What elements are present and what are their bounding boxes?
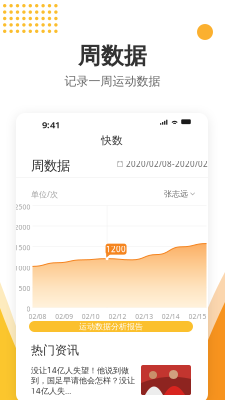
button[interactable]: 2020/02/08-2020/02/15 bbox=[117, 158, 221, 169]
staticText: 周数据 bbox=[78, 42, 147, 70]
staticText: 02/13 bbox=[135, 312, 153, 321]
staticText: 02/14 bbox=[162, 312, 180, 321]
staticText: 2000 bbox=[14, 223, 30, 232]
staticText: 记录一周运动数据 bbox=[64, 74, 160, 88]
staticText: 1200 bbox=[106, 244, 126, 254]
staticText: 0 bbox=[26, 304, 30, 313]
staticText: 2500 bbox=[14, 202, 30, 211]
staticText: 1500 bbox=[14, 243, 30, 252]
staticText: 500 bbox=[18, 284, 30, 293]
button[interactable]: 运动数据分析报告 bbox=[29, 321, 193, 332]
staticText: 02/08 bbox=[28, 312, 46, 321]
staticText: 运动数据分析报告 bbox=[79, 322, 143, 331]
staticText: 02/12 bbox=[108, 312, 126, 321]
staticText: 没让14亿人失望！他说到做到，国足早请他会怎样？没让14亿人失… bbox=[31, 365, 135, 396]
button[interactable]: 张志远 bbox=[164, 189, 195, 199]
staticText: 张志远 bbox=[164, 189, 188, 199]
staticText: 9:41 bbox=[42, 118, 60, 131]
staticText: 周数据 bbox=[31, 157, 70, 174]
staticText: 02/10 bbox=[82, 312, 100, 321]
staticText: 1000 bbox=[14, 264, 30, 272]
staticText: 2020/02/08-2020/02/15 bbox=[126, 158, 221, 169]
staticText: 单位/次 bbox=[31, 189, 58, 200]
staticText: 02/09 bbox=[55, 312, 73, 321]
staticText: 热门资讯 bbox=[31, 343, 79, 358]
staticText: 02/15 bbox=[188, 312, 206, 321]
button[interactable]: 没让14亿人失望！他说到做到，国足早请他会怎样？没让14亿人失… bbox=[31, 365, 191, 396]
staticText: 快数 bbox=[101, 134, 123, 147]
